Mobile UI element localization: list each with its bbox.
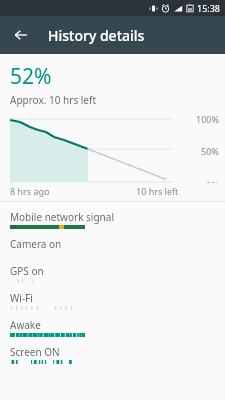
staticText: 8 hrs ago bbox=[10, 185, 50, 197]
staticText: History details bbox=[48, 26, 145, 45]
staticText: Screen ON bbox=[10, 345, 60, 359]
staticText: GPS on bbox=[10, 264, 44, 278]
staticText: 50% bbox=[201, 145, 219, 157]
staticText: 0% bbox=[206, 179, 219, 183]
staticText: 15:38 bbox=[197, 2, 221, 14]
staticText: Wi-Fi bbox=[10, 291, 33, 305]
button[interactable]: Mobile network signal bbox=[10, 207, 225, 234]
button[interactable]: GPS on bbox=[10, 261, 225, 288]
staticText: Camera on bbox=[10, 237, 62, 251]
button[interactable]: Camera on bbox=[10, 234, 225, 261]
staticText: 52% bbox=[10, 62, 52, 91]
staticText: Awake bbox=[10, 318, 41, 332]
staticText: Approx. 10 hrs left bbox=[10, 93, 97, 107]
button[interactable]: Wi-Fi bbox=[10, 288, 225, 315]
button[interactable]: Awake bbox=[10, 315, 225, 342]
staticText: 10 hrs left bbox=[136, 185, 179, 197]
button[interactable]: Back bbox=[6, 20, 36, 50]
staticText: Mobile network signal bbox=[10, 210, 114, 224]
staticText: 100% bbox=[196, 113, 219, 125]
button[interactable]: Screen ON bbox=[10, 342, 225, 369]
